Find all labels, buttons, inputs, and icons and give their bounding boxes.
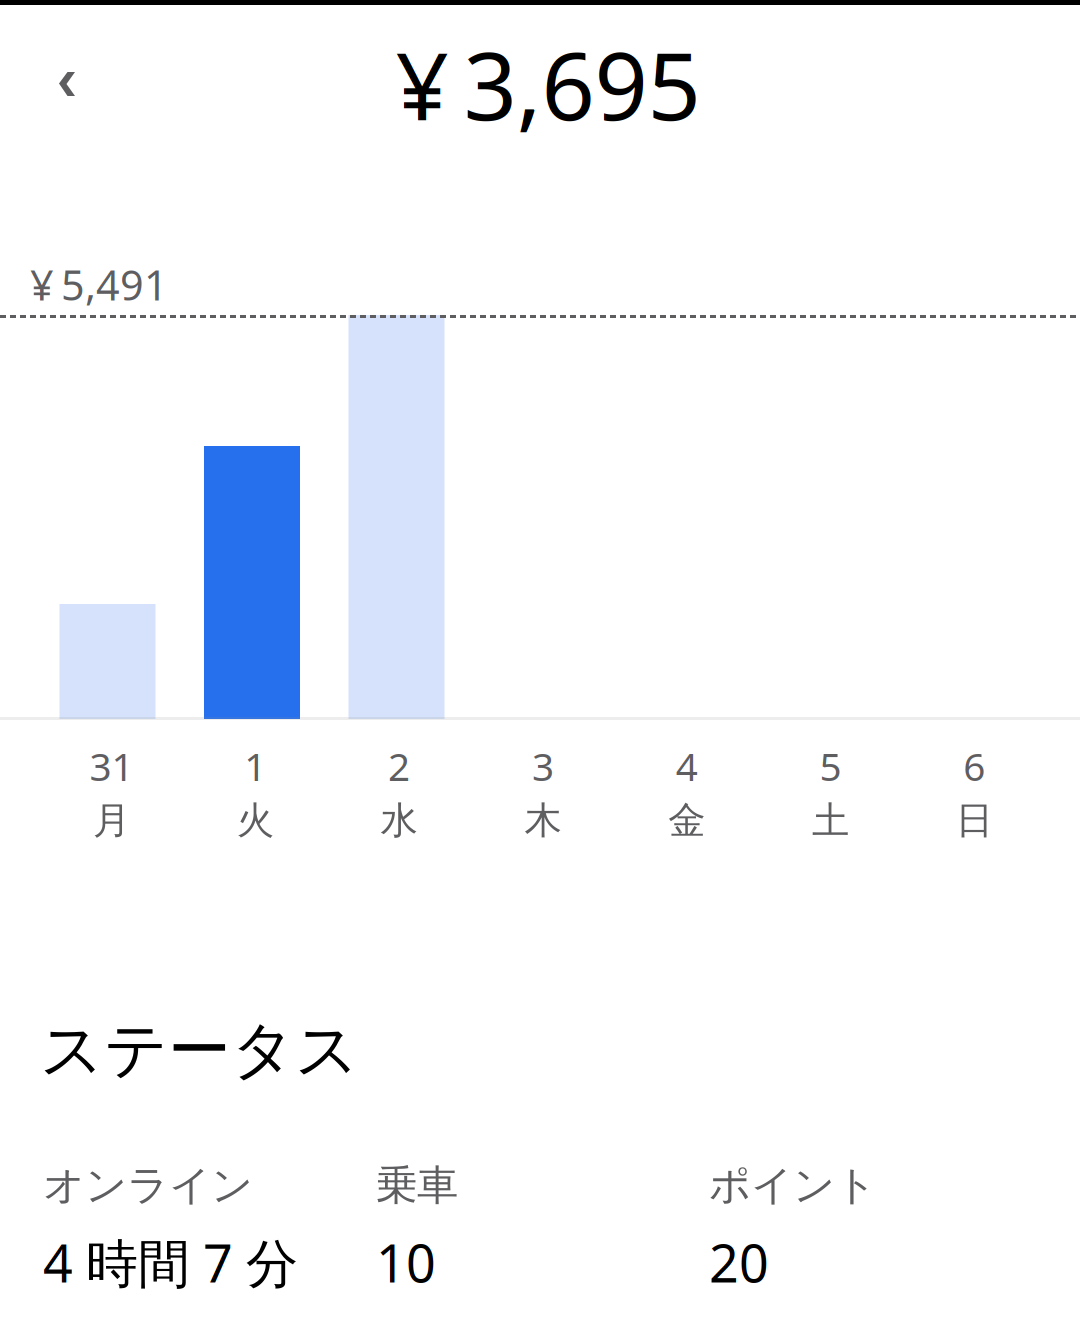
staticText: 水 bbox=[381, 798, 418, 844]
staticText: ポイント bbox=[709, 1160, 877, 1211]
staticText: 5 bbox=[819, 740, 841, 792]
staticText: 土 bbox=[812, 798, 849, 844]
button[interactable]: 2 bbox=[327, 742, 471, 842]
staticText: 日 bbox=[956, 798, 993, 844]
staticText: ステータス bbox=[40, 1012, 359, 1089]
button[interactable]: 31 bbox=[40, 742, 183, 842]
staticText: 3 bbox=[532, 740, 554, 792]
button[interactable]: 3 bbox=[471, 742, 615, 842]
button[interactable]: 1 bbox=[183, 742, 327, 842]
staticText: 6 bbox=[963, 740, 985, 792]
staticText: ¥ 5,491 bbox=[30, 257, 168, 312]
staticText: オンライン bbox=[43, 1160, 253, 1211]
staticText: 4 bbox=[676, 740, 698, 792]
button[interactable]: Back bbox=[0, 24, 120, 144]
staticText: 乗車 bbox=[376, 1160, 458, 1211]
staticText: 10 bbox=[376, 1228, 436, 1297]
staticText: 2 bbox=[388, 740, 410, 792]
staticText: 火 bbox=[237, 798, 274, 844]
staticText: 金 bbox=[668, 798, 705, 844]
button[interactable]: 5 bbox=[759, 742, 902, 842]
staticText: 月 bbox=[93, 798, 130, 844]
staticText: 1 bbox=[244, 740, 266, 792]
staticText: 31 bbox=[89, 740, 133, 792]
staticText: 4 時間 7 分 bbox=[43, 1228, 298, 1297]
staticText: 木 bbox=[524, 798, 561, 844]
button[interactable]: 6 bbox=[902, 742, 1046, 842]
staticText: 20 bbox=[709, 1228, 769, 1297]
button[interactable]: 4 bbox=[615, 742, 759, 842]
staticText: ¥ 3,695 bbox=[395, 22, 700, 146]
